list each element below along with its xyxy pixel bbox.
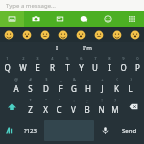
staticText: U — [92, 62, 98, 73]
button[interactable]: ! — [94, 96, 108, 117]
staticText: Z — [28, 104, 33, 115]
button[interactable]: ?123 — [18, 117, 42, 144]
staticText: _ — [60, 77, 62, 82]
button[interactable]: Stickers — [48, 11, 72, 27]
staticText: * — [29, 98, 32, 103]
staticText: - — [87, 77, 89, 82]
button[interactable]: Emoji 3 — [54, 27, 72, 42]
staticText: Send — [122, 127, 137, 135]
button[interactable]: Backspace — [122, 96, 144, 117]
staticText: L — [128, 83, 133, 94]
staticText: D — [43, 83, 49, 94]
staticText: # — [29, 77, 32, 82]
button[interactable]: GIF — [72, 11, 96, 27]
staticText: X — [43, 104, 48, 115]
button[interactable]: 2 — [15, 54, 30, 75]
button[interactable]: Emoji — [96, 11, 120, 27]
staticText: T — [65, 62, 70, 73]
button[interactable]: Emoji 6 — [108, 27, 126, 42]
button[interactable]: & — [67, 75, 81, 96]
button[interactable]: Change language — [0, 117, 18, 144]
button[interactable]: ' — [52, 96, 66, 117]
staticText: C — [56, 104, 62, 115]
staticText: 5 — [66, 56, 69, 61]
staticText: M — [111, 104, 119, 115]
button[interactable]: Shift — [0, 96, 23, 117]
staticText: K — [114, 83, 119, 94]
staticText: ?123 — [24, 127, 37, 135]
staticText: ) — [130, 77, 132, 82]
button[interactable]: 7 — [88, 54, 102, 75]
button[interactable]: 9 — [116, 54, 130, 75]
button[interactable]: + — [95, 75, 109, 96]
staticText: G — [71, 83, 77, 94]
button[interactable]: I'm — [72, 42, 102, 54]
button[interactable]: 3 — [30, 54, 45, 75]
button[interactable]: Emoji 5 — [90, 27, 108, 42]
button[interactable]: 1 — [0, 54, 15, 75]
button[interactable]: - — [81, 75, 95, 96]
button[interactable]: 5 — [60, 54, 74, 75]
button[interactable]: " — [38, 96, 52, 117]
staticText: ? — [114, 98, 116, 103]
button[interactable]: Emoji 4 — [72, 27, 90, 42]
button[interactable]: ( — [109, 75, 123, 96]
button[interactable]: Type a message... — [0, 0, 144, 11]
staticText: I'm — [83, 44, 92, 52]
staticText: 6 — [80, 56, 83, 61]
staticText: 1 — [6, 56, 9, 61]
staticText: 2 — [22, 56, 25, 61]
staticText: & — [73, 77, 76, 82]
staticText: I — [56, 44, 59, 52]
staticText: @ — [14, 77, 18, 82]
button[interactable]: @ — [8, 75, 23, 96]
button[interactable]: * — [23, 96, 38, 117]
staticText: $ — [45, 77, 48, 82]
button[interactable]: : — [66, 96, 80, 117]
button[interactable]: Voice input — [96, 117, 115, 144]
button[interactable]: Gallery — [0, 11, 24, 27]
button[interactable]: 8 — [102, 54, 116, 75]
staticText: H — [85, 83, 91, 94]
staticText: 4 — [51, 56, 54, 61]
staticText: ! — [101, 98, 103, 103]
staticText: 7 — [94, 56, 97, 61]
button[interactable]: 0 — [130, 54, 144, 75]
button[interactable]: Apps — [120, 11, 144, 27]
button[interactable]: Send — [115, 117, 144, 144]
staticText: ( — [116, 77, 118, 82]
button[interactable]: 6 — [74, 54, 88, 75]
staticText: A — [13, 83, 19, 94]
button[interactable]: # — [23, 75, 38, 96]
button[interactable]: Emoji 2 — [36, 27, 54, 42]
staticText: E — [35, 62, 40, 73]
staticText: Q — [4, 62, 11, 73]
staticText: 8 — [108, 56, 111, 61]
button[interactable]: Camera — [24, 11, 48, 27]
staticText: P — [135, 62, 140, 73]
button[interactable]: Emoji 1 — [18, 27, 36, 42]
staticText: W — [19, 62, 27, 73]
staticText: J — [101, 83, 104, 94]
button[interactable]: Emoji 0 — [0, 27, 18, 42]
staticText: ; — [86, 98, 88, 103]
button[interactable]: ; — [80, 96, 94, 117]
staticText: V — [71, 104, 76, 115]
button[interactable]: ? — [108, 96, 122, 117]
button[interactable]: 4 — [45, 54, 60, 75]
button[interactable]: _ — [53, 75, 67, 96]
staticText: F — [58, 83, 63, 94]
staticText: N — [98, 104, 105, 115]
button[interactable]: Emoji 7 — [126, 27, 144, 42]
staticText: : — [73, 98, 75, 103]
button[interactable]: ) — [123, 75, 137, 96]
button[interactable]: $ — [38, 75, 53, 96]
staticText: I — [108, 62, 111, 73]
staticText: + — [101, 77, 104, 82]
staticText: O — [120, 62, 127, 73]
button[interactable]: I — [42, 42, 72, 54]
staticText: 3 — [36, 56, 39, 61]
staticText: 0 — [136, 56, 139, 61]
staticText: S — [28, 83, 33, 94]
